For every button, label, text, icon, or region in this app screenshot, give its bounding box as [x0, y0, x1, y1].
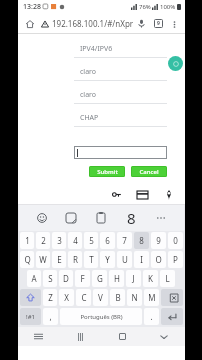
button[interactable]: Cancel: [131, 166, 167, 177]
button[interactable]: Clipboard: [86, 213, 116, 223]
button[interactable]: D: [59, 270, 73, 287]
button[interactable]: 4: [68, 232, 82, 249]
button[interactable]: F: [75, 270, 90, 287]
button[interactable]: Home: [22, 16, 38, 32]
staticText: I: [140, 254, 143, 265]
staticText: E: [57, 254, 62, 265]
button[interactable]: Payment methods: [136, 188, 149, 201]
staticText: M: [148, 292, 156, 303]
button[interactable]: S: [43, 270, 57, 287]
button[interactable]: Submit: [89, 166, 125, 177]
button[interactable]: E: [52, 251, 66, 268]
button[interactable]: Addresses: [162, 188, 175, 201]
button[interactable]: B: [110, 289, 125, 306]
staticText: 1: [25, 235, 30, 246]
button[interactable]: More keyboard options: [146, 216, 176, 220]
button[interactable]: X: [59, 289, 74, 306]
button[interactable]: I: [134, 251, 149, 268]
button[interactable]: H: [109, 270, 124, 287]
staticText: L: [165, 273, 170, 284]
staticText: claro: [80, 90, 97, 100]
staticText: O: [155, 254, 162, 265]
button[interactable]: 1: [20, 232, 34, 249]
staticText: W: [39, 254, 47, 265]
button[interactable]: U: [117, 251, 132, 268]
staticText: Z: [48, 292, 53, 303]
button[interactable]: 9: [151, 232, 166, 249]
button[interactable]: 2: [36, 232, 50, 249]
button[interactable]: [161, 289, 183, 306]
staticText: 100%: [160, 3, 176, 11]
staticText: 4: [73, 235, 78, 246]
staticText: 5: [89, 235, 94, 246]
staticText: B: [115, 292, 121, 303]
button[interactable]: Back: [59, 327, 101, 346]
button[interactable]: [161, 308, 183, 325]
button[interactable]: 7: [117, 232, 132, 249]
staticText: claro: [80, 67, 97, 77]
button[interactable]: .: [144, 308, 159, 325]
button[interactable]: [20, 289, 41, 306]
button[interactable]: !#1: [20, 308, 41, 325]
staticText: Q: [24, 254, 31, 265]
staticText: F: [80, 273, 85, 284]
staticText: C: [81, 292, 87, 303]
button[interactable]: Stickers: [56, 213, 86, 223]
button[interactable]: L: [160, 270, 175, 287]
button[interactable]: M: [144, 289, 159, 306]
button[interactable]: A: [27, 270, 41, 287]
staticText: N: [131, 292, 138, 303]
button[interactable]: Switch tabs: [151, 16, 166, 31]
staticText: 9: [156, 235, 161, 246]
button[interactable]: Y: [100, 251, 115, 268]
button[interactable]: Z: [43, 289, 57, 306]
button[interactable]: [74, 146, 167, 159]
staticText: A: [31, 273, 37, 284]
button[interactable]: Emoji: [27, 213, 56, 223]
button[interactable]: O: [151, 251, 166, 268]
staticText: 0: [173, 235, 178, 246]
staticText: .: [150, 311, 153, 322]
button[interactable]: 3: [52, 232, 66, 249]
button[interactable]: Action button: [168, 56, 183, 71]
button[interactable]: 0: [168, 232, 183, 249]
staticText: IPV4/IPV6: [80, 44, 113, 54]
button[interactable]: W: [36, 251, 50, 268]
staticText: !#1: [26, 313, 35, 321]
button[interactable]: V: [93, 289, 108, 306]
button[interactable]: claro: [74, 63, 167, 80]
staticText: 2: [41, 235, 46, 246]
button[interactable]: Q: [20, 251, 34, 268]
button[interactable]: ,: [43, 308, 58, 325]
button[interactable]: G: [92, 270, 107, 287]
button[interactable]: K: [143, 270, 158, 287]
button[interactable]: Home: [101, 327, 143, 346]
button[interactable]: 6: [100, 232, 115, 249]
button[interactable]: C: [76, 289, 91, 306]
button[interactable]: Recents: [18, 327, 59, 346]
button[interactable]: T: [84, 251, 98, 268]
staticText: 7: [122, 235, 127, 246]
button[interactable]: IPV4/IPV6: [74, 40, 167, 57]
button[interactable]: R: [68, 251, 82, 268]
staticText: K: [148, 273, 153, 284]
staticText: ,: [49, 311, 52, 322]
staticText: X: [64, 292, 69, 303]
button[interactable]: 5: [84, 232, 98, 249]
staticText: 6: [105, 235, 110, 246]
button[interactable]: Passwords: [110, 188, 123, 201]
staticText: D: [63, 273, 69, 284]
button[interactable]: Português (BR): [60, 308, 142, 325]
button[interactable]: Hide keyboard: [143, 327, 185, 346]
button[interactable]: P: [168, 251, 183, 268]
staticText: V: [98, 292, 103, 303]
button[interactable]: claro: [74, 86, 167, 103]
button[interactable]: J: [126, 270, 141, 287]
staticText: 8: [127, 208, 136, 228]
button[interactable]: More options: [167, 17, 181, 31]
button[interactable]: CHAP: [74, 109, 167, 126]
button[interactable]: 8: [134, 232, 149, 249]
button[interactable]: Voice search: [134, 16, 149, 31]
staticText: 9: [157, 20, 160, 27]
button[interactable]: N: [127, 289, 142, 306]
